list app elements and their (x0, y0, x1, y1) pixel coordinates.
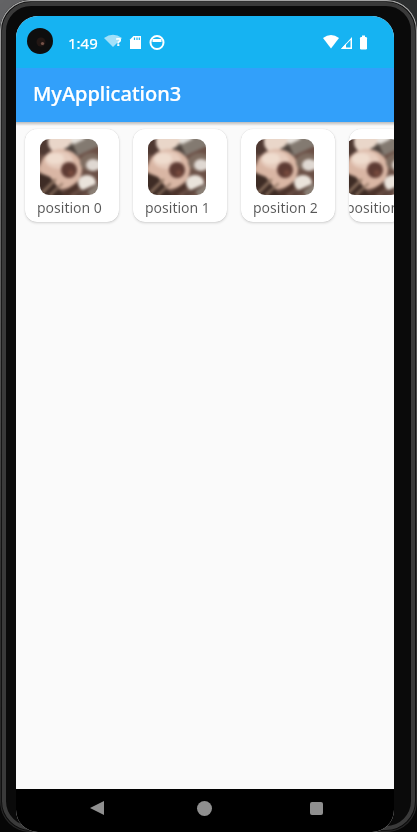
staticText: position 3 (349, 198, 394, 222)
button[interactable] (81, 792, 113, 824)
staticText: position 0 (37, 198, 102, 217)
staticText: 1:49 (68, 33, 98, 53)
button[interactable] (300, 792, 332, 824)
staticText: position 1 (145, 198, 210, 217)
button[interactable]: position 1 (133, 129, 227, 222)
button[interactable] (188, 792, 220, 824)
staticText: MyApplication3 (33, 80, 182, 107)
button[interactable]: position 2 (241, 129, 335, 222)
button[interactable]: position 0 (25, 129, 119, 222)
staticText: ? (116, 34, 122, 49)
staticText: position 2 (253, 198, 318, 217)
button[interactable]: position 3 (349, 129, 394, 222)
